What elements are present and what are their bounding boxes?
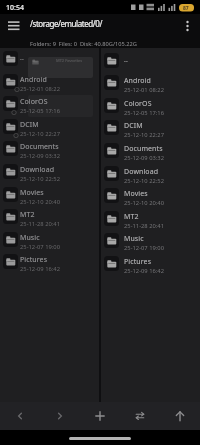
button[interactable]: Music: [3, 232, 98, 254]
button[interactable]: Download: [104, 166, 199, 188]
staticText: 25-12-09 03:32: [124, 154, 164, 162]
staticText: Documents: [20, 142, 59, 152]
staticText: 25-12-10 20:40: [124, 199, 164, 207]
button[interactable]: Android: [104, 75, 199, 97]
button[interactable]: MT2: [3, 209, 98, 231]
staticText: Music: [124, 234, 144, 244]
staticText: 25-11-28 20:41: [20, 220, 60, 228]
button[interactable]: [178, 16, 198, 38]
button[interactable]: [86, 402, 114, 430]
staticText: MT2: [20, 210, 35, 220]
staticText: 25-12-10 22:27: [124, 131, 164, 139]
staticText: 25-12-09 16:42: [20, 265, 60, 273]
staticText: 25-12-09 03:32: [20, 152, 60, 160]
staticText: Folders: 9 Files: 0 Disk: 40.80G/105.22G: [30, 40, 137, 48]
staticText: ColorOS: [124, 99, 152, 109]
button[interactable]: Pictures: [104, 256, 199, 278]
staticText: Pictures: [124, 257, 152, 267]
staticText: ColorOS: [20, 97, 48, 107]
button[interactable]: Documents: [3, 141, 98, 163]
staticText: ..: [124, 55, 128, 65]
staticText: MT2 Favorites: [56, 58, 83, 63]
staticText: DCIM: [124, 121, 143, 131]
staticText: 25-12-07 19:00: [20, 243, 60, 251]
staticText: Music: [20, 233, 40, 243]
staticText: MT2: [124, 212, 139, 222]
button[interactable]: Download: [3, 164, 98, 186]
button[interactable]: [6, 402, 34, 430]
button[interactable]: Movies: [104, 188, 199, 210]
button[interactable]: [126, 402, 154, 430]
button[interactable]: ..: [3, 51, 98, 73]
button[interactable]: [166, 402, 194, 430]
button[interactable]: Documents: [104, 143, 199, 165]
staticText: 25-12-01 08:22: [20, 85, 60, 93]
staticText: ..: [20, 53, 24, 63]
button[interactable]: [46, 402, 74, 430]
staticText: Android: [124, 76, 151, 86]
staticText: 25-12-10 20:40: [20, 198, 60, 206]
staticText: DCIM: [20, 120, 39, 130]
button[interactable]: ColorOS: [3, 96, 98, 118]
button[interactable]: ColorOS: [104, 98, 199, 120]
staticText: Download: [20, 165, 55, 175]
button[interactable]: DCIM: [3, 119, 98, 141]
staticText: 25-12-01 08:22: [124, 86, 164, 94]
staticText: 25-12-05 17:16: [20, 107, 60, 115]
staticText: Movies: [20, 188, 44, 198]
staticText: 25-12-07 19:00: [124, 244, 164, 252]
staticText: 25-12-10 22:52: [20, 175, 60, 183]
button[interactable]: DCIM: [104, 120, 199, 142]
staticText: 25-12-05 17:16: [124, 109, 164, 117]
staticText: 25-12-10 22:52: [124, 177, 164, 185]
staticText: Pictures: [20, 255, 48, 265]
staticText: 25-12-10 22:27: [20, 130, 60, 138]
staticText: Android: [20, 75, 47, 85]
button[interactable]: Pictures: [3, 254, 98, 276]
staticText: Movies: [124, 189, 148, 199]
staticText: 10:54: [6, 3, 24, 13]
staticText: Documents: [124, 144, 163, 154]
button[interactable]: ..: [104, 53, 199, 75]
staticText: /storage/emulated/0/: [30, 18, 102, 29]
button[interactable]: MT2: [104, 211, 199, 233]
button[interactable]: Android: [3, 74, 98, 96]
staticText: 87: [183, 5, 189, 12]
staticText: 25-11-28 20:41: [124, 222, 164, 230]
button[interactable]: Music: [104, 233, 199, 255]
staticText: 25-12-09 16:42: [124, 267, 164, 275]
staticText: Download: [124, 167, 159, 177]
button[interactable]: Movies: [3, 187, 98, 209]
button[interactable]: [0, 14, 28, 38]
